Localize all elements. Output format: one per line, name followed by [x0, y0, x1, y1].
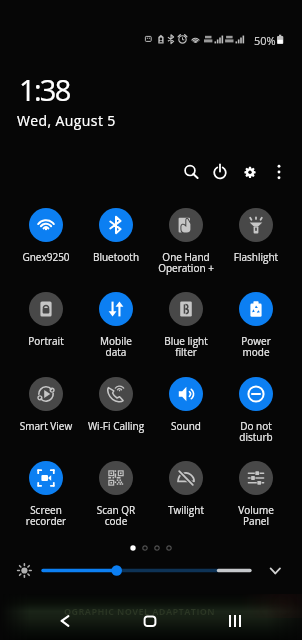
staticText: Wi-Fi Calling	[82, 419, 150, 433]
staticText: Scan QR code	[82, 503, 150, 528]
button[interactable]: Bluetooth	[82, 208, 150, 264]
staticText: Twilight	[152, 503, 220, 517]
button[interactable]: Back	[41, 604, 89, 638]
staticText: 50%	[254, 33, 276, 48]
button[interactable]: Power	[204, 156, 236, 188]
button[interactable]: Volume Panel	[222, 461, 290, 528]
button[interactable]: Flashlight	[222, 208, 290, 264]
button[interactable]: Home	[126, 604, 174, 638]
staticText: 1:38	[19, 70, 70, 109]
staticText: Flashlight	[222, 250, 290, 264]
staticText: Sound	[152, 419, 220, 433]
button[interactable]: Gnex9250	[12, 208, 80, 264]
button[interactable]: Twilight	[152, 461, 220, 517]
button[interactable]: Mobile data	[82, 292, 150, 359]
button[interactable]: Power mode	[222, 292, 290, 359]
button[interactable]: Scan QR code	[82, 461, 150, 528]
staticText: Screen recorder	[12, 503, 80, 528]
button[interactable]: Screen recorder	[12, 461, 80, 528]
button[interactable]: Sound	[152, 377, 220, 433]
button[interactable]: Smart View	[12, 377, 80, 433]
staticText: Portrait	[12, 334, 80, 348]
staticText: Blue light filter	[152, 334, 220, 359]
staticText: Volume Panel	[222, 503, 290, 528]
staticText: Smart View	[12, 419, 80, 433]
staticText: OGRAPHIC NOVEL ADAPTATION	[64, 605, 216, 617]
staticText: Power mode	[222, 334, 290, 359]
button[interactable]: Settings	[234, 156, 266, 188]
button[interactable]: More options	[263, 156, 295, 188]
button[interactable]: Do not disturb	[222, 377, 290, 444]
button[interactable]: Portrait	[12, 292, 80, 348]
staticText: Wed, August 5	[17, 111, 116, 130]
button[interactable]: Blue light filter	[152, 292, 220, 359]
staticText: One Hand Operation +	[152, 250, 220, 275]
staticText: Mobile data	[82, 334, 150, 359]
button[interactable]: Brightness	[0, 558, 302, 583]
staticText: Bluetooth	[82, 250, 150, 264]
button[interactable]: One Hand Operation +	[152, 208, 220, 275]
staticText: Gnex9250	[12, 250, 80, 264]
button[interactable]: Wi-Fi Calling	[82, 377, 150, 433]
button[interactable]: Recents	[211, 604, 259, 638]
staticText: Do not disturb	[222, 419, 290, 444]
button[interactable]: Search	[175, 156, 207, 188]
